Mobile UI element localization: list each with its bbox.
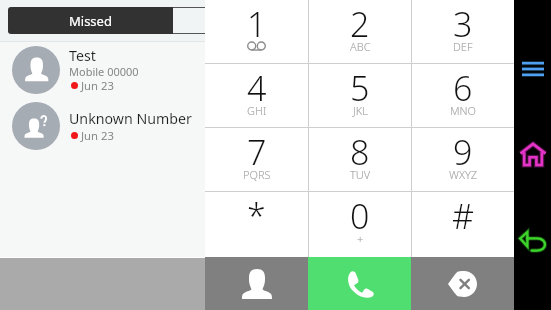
staticText: Mobile 00000 — [69, 64, 139, 79]
staticText: 5 — [350, 65, 370, 111]
button[interactable]: 9 — [412, 128, 514, 191]
button[interactable]: Backspace — [411, 257, 514, 310]
staticText: PQRS — [243, 167, 271, 182]
button[interactable]: Test — [0, 42, 205, 98]
staticText: 8 — [350, 129, 370, 175]
button[interactable]: # — [412, 192, 514, 257]
button[interactable]: 8 — [309, 128, 411, 191]
button[interactable]: 7 — [205, 128, 308, 191]
staticText: 0 — [350, 193, 370, 239]
staticText: 1 — [247, 1, 267, 47]
staticText: # — [452, 193, 474, 239]
button[interactable] — [173, 7, 205, 34]
staticText: Missed — [69, 12, 112, 30]
staticText: DEF — [453, 39, 473, 54]
staticText: + — [357, 231, 364, 246]
button[interactable]: Call — [308, 257, 411, 310]
staticText: 2 — [350, 1, 370, 47]
button[interactable]: 6 — [412, 64, 514, 127]
staticText: * — [247, 193, 266, 239]
staticText: Unknown Number — [69, 109, 192, 128]
button[interactable]: Back — [514, 225, 551, 258]
staticText: WXYZ — [449, 167, 478, 182]
button[interactable]: * — [205, 192, 308, 257]
button[interactable]: Missed — [8, 7, 173, 34]
staticText: ABC — [350, 39, 371, 54]
staticText: 7 — [247, 129, 267, 175]
staticText: Test — [69, 46, 96, 65]
button[interactable]: Contacts — [205, 257, 308, 310]
button[interactable]: 4 — [205, 64, 308, 127]
button[interactable]: Unknown Number — [0, 98, 205, 154]
staticText: 4 — [247, 65, 267, 111]
staticText: Jun 23 — [81, 78, 114, 93]
button[interactable]: Menu — [514, 52, 551, 85]
button[interactable]: 3 — [412, 0, 514, 63]
staticText: GHI — [247, 103, 267, 118]
staticText: JKL — [353, 103, 368, 118]
button[interactable]: 0 — [309, 192, 411, 257]
staticText: MNO — [450, 103, 477, 118]
button[interactable]: Home — [514, 138, 551, 171]
button[interactable]: 2 — [309, 0, 411, 63]
button[interactable]: 5 — [309, 64, 411, 127]
staticText: 9 — [453, 129, 473, 175]
staticText: 3 — [453, 1, 473, 47]
staticText: 6 — [453, 65, 473, 111]
staticText: Jun 23 — [81, 128, 114, 143]
button[interactable]: 1 — [205, 0, 308, 63]
staticText: TUV — [350, 167, 371, 182]
